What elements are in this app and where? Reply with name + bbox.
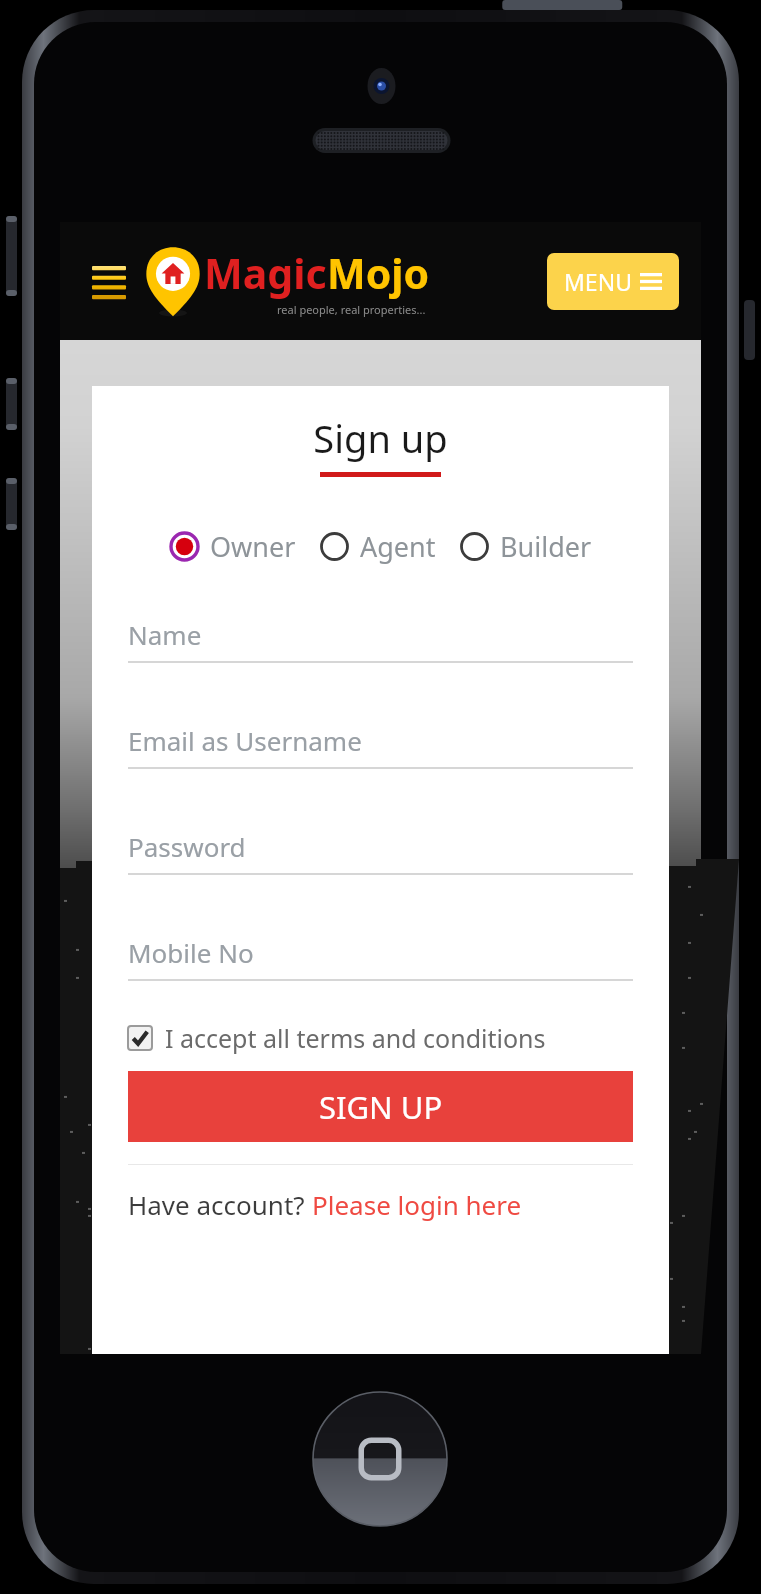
- staticText: real people, real properties...: [277, 302, 426, 317]
- button[interactable]: Open navigation menu: [86, 258, 132, 304]
- staticText: Sign up: [313, 412, 448, 464]
- staticText: Email as Username: [128, 723, 362, 758]
- staticText: Have account?: [128, 1187, 312, 1222]
- button[interactable]: Home: [313, 1392, 447, 1526]
- staticText: Mojo: [327, 245, 430, 301]
- staticText: Magic: [204, 245, 327, 301]
- button[interactable]: SIGN UP: [128, 1071, 633, 1142]
- button[interactable]: Magic Mojo home: [144, 245, 430, 317]
- button[interactable]: Have account?: [128, 1187, 633, 1222]
- staticText: Builder: [500, 528, 592, 565]
- staticText: Mobile No: [128, 935, 254, 970]
- button[interactable]: Agent: [320, 528, 436, 565]
- staticText: Owner: [210, 528, 296, 565]
- button[interactable]: Builder: [460, 528, 592, 565]
- staticText: MENU: [564, 266, 632, 297]
- staticText: Please login here: [312, 1187, 522, 1222]
- staticText: Name: [128, 617, 202, 652]
- button[interactable]: I accept all terms and conditions: [128, 1021, 633, 1055]
- button[interactable]: MENU: [547, 253, 679, 310]
- button[interactable]: Owner: [170, 528, 296, 565]
- staticText: Agent: [360, 528, 436, 565]
- staticText: SIGN UP: [319, 1086, 443, 1128]
- staticText: Password: [128, 829, 246, 864]
- staticText: I accept all terms and conditions: [165, 1021, 546, 1055]
